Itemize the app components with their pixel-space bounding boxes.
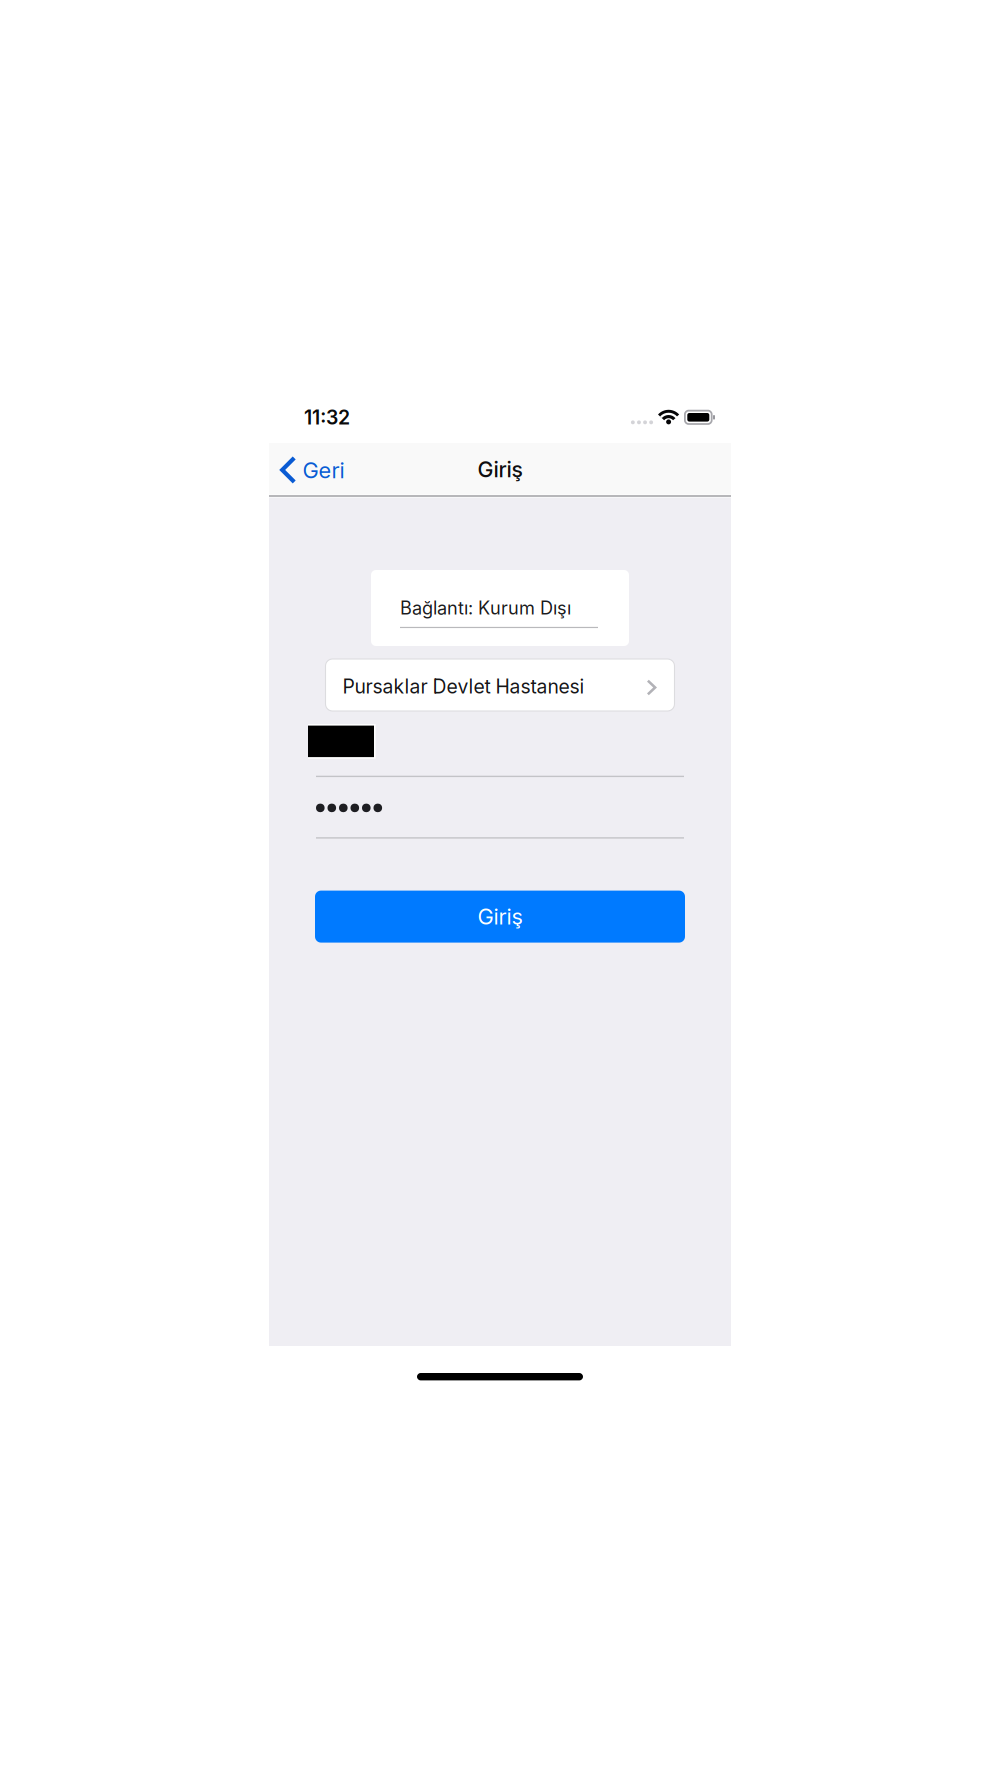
button[interactable]: Pursaklar Devlet Hastanesi bbox=[325, 659, 674, 711]
staticText: Giriş bbox=[477, 903, 522, 930]
staticText: 11:32 bbox=[304, 406, 350, 429]
staticText: Giriş bbox=[477, 457, 522, 482]
staticText: Geri bbox=[302, 457, 344, 484]
button[interactable]: Parola bbox=[316, 804, 684, 839]
button[interactable]: Giriş bbox=[315, 891, 685, 943]
button[interactable]: Kullanıcı adı bbox=[308, 724, 692, 777]
button[interactable]: Geri bbox=[269, 443, 358, 494]
staticText: Bağlantı: Kurum Dışı bbox=[400, 597, 571, 619]
staticText: Pursaklar Devlet Hastanesi bbox=[342, 675, 584, 698]
button[interactable]: Bağlantı: Kurum Dışı bbox=[371, 570, 629, 646]
